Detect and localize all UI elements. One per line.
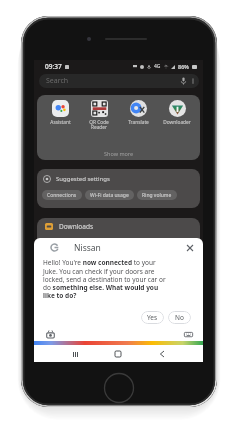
button[interactable]: Connections [42,190,82,200]
staticText: Nissan [74,242,101,254]
button[interactable]: Back [155,347,169,361]
staticText: No [175,313,184,322]
staticText: Wi-Fi data usage [90,192,129,199]
button[interactable]: Yes [141,311,164,324]
button[interactable]: Home [111,347,125,361]
staticText: Suggested settings [56,175,110,183]
staticText: Downloads [59,222,94,231]
button[interactable]: Wi-Fi data usage [85,190,134,200]
staticText: 86% [178,63,189,70]
button[interactable]: Close [184,242,196,254]
staticText: QR Code Reader [89,119,109,131]
button[interactable]: Downloader [159,100,195,126]
button[interactable]: Assistant [42,100,78,126]
staticText: 09:37 [45,62,62,71]
button[interactable]: Search [39,74,199,88]
button[interactable]: Keyboard [184,331,193,338]
staticText: Search [46,76,69,86]
staticText: 4G [154,63,161,70]
staticText: Yes [147,313,158,322]
staticText: Translate [128,119,149,126]
button[interactable]: QR Code Reader [81,100,117,131]
staticText: Show more [104,150,134,157]
button[interactable]: No [168,311,191,324]
button[interactable]: Ring volume [137,190,177,200]
button[interactable]: Translate [120,100,156,126]
staticText: Hello! You're now connected to your Juke… [43,258,171,299]
staticText: Downloader [163,119,191,126]
staticText: Assistant [50,119,71,126]
button[interactable]: Google Lens [46,330,55,339]
staticText: Ring volume [142,192,172,199]
button[interactable]: Recents [68,347,82,361]
staticText: Connections [47,192,77,199]
